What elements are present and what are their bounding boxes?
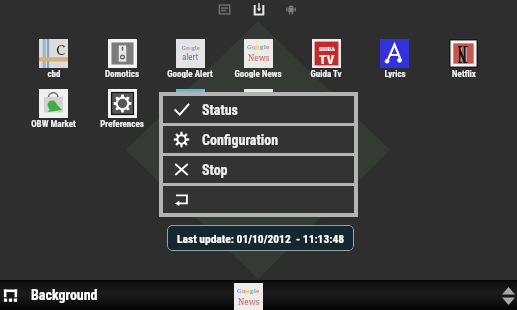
staticText: alert [182, 52, 199, 63]
staticText: Configuration [202, 132, 279, 148]
staticText: o [246, 286, 250, 294]
button[interactable] [224, 89, 292, 128]
staticText: Netflix [452, 69, 476, 78]
staticText: l [264, 42, 266, 50]
button[interactable]: Stop [163, 156, 354, 183]
staticText: Last update: 01/10/2012 - 11:13:48 [177, 232, 345, 245]
staticText: l [254, 286, 256, 294]
staticText: Stop [202, 162, 228, 178]
staticText: o [189, 45, 192, 52]
button[interactable]: Configuration [163, 126, 354, 153]
staticText: l [195, 45, 197, 52]
button[interactable] [156, 89, 224, 128]
staticText: cbd [47, 69, 61, 78]
staticText: OBW Market [31, 119, 76, 128]
staticText: e [197, 45, 200, 52]
button[interactable]: OBW Market [19, 89, 87, 128]
staticText: G [182, 45, 186, 52]
button[interactable]: Notifications [218, 4, 231, 15]
staticText: Preferences [100, 119, 144, 128]
staticText: g [260, 42, 264, 50]
staticText: G [247, 42, 252, 50]
staticText: o [252, 42, 256, 50]
button[interactable]: Android [285, 4, 297, 15]
button[interactable]: Status [163, 96, 354, 123]
button[interactable]: Domotics [88, 39, 156, 78]
button[interactable]: Download [253, 2, 265, 16]
staticText: Google News [234, 69, 282, 78]
staticText: g [250, 286, 254, 294]
button[interactable]: G [156, 39, 224, 78]
staticText: Lyrics [384, 69, 406, 78]
staticText: Guida Tv [310, 69, 342, 78]
button[interactable]: Lyrics [360, 39, 428, 78]
staticText: e [266, 42, 270, 50]
button[interactable]: GUIDA [292, 39, 360, 78]
staticText: o [242, 286, 246, 294]
button[interactable]: G [224, 39, 292, 78]
button[interactable]: Google News [234, 283, 263, 310]
button[interactable]: Preferences [88, 89, 156, 128]
staticText: Google Alert [167, 69, 213, 78]
staticText: o [186, 45, 189, 52]
staticText: o [256, 42, 260, 50]
staticText: e [256, 286, 260, 294]
staticText: TV [319, 52, 335, 68]
button[interactable]: C [19, 39, 87, 78]
staticText: Status [202, 102, 238, 118]
staticText: News [248, 52, 270, 63]
button[interactable]: Scroll [502, 287, 515, 305]
staticText: Domotics [105, 69, 139, 78]
staticText: News [238, 296, 260, 307]
staticText: GUIDA [319, 45, 335, 52]
button[interactable] [163, 186, 354, 213]
button[interactable]: Background [3, 288, 18, 303]
button[interactable]: Last update: 01/10/2012 - 11:13:48 [167, 225, 354, 251]
staticText: Background [31, 287, 98, 303]
staticText: G [237, 286, 242, 294]
staticText: C [56, 39, 66, 60]
staticText: g [192, 45, 195, 52]
button[interactable]: Netflix [429, 39, 497, 78]
